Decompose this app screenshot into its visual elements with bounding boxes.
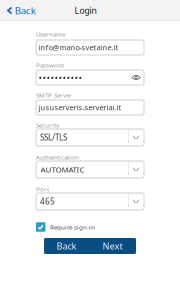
staticText: Login [74,5,96,16]
button[interactable]: Back [0,0,40,21]
staticText: info@mano-svetaine.lt [39,42,119,52]
staticText: SSL/TLS [40,132,67,143]
staticText: Port [36,185,49,193]
staticText: Password [36,61,64,69]
staticText: AUTOMATIC [40,164,84,175]
staticText: Back [56,240,76,252]
staticText: ••••••••••• [39,71,83,84]
staticText: Require sign-in [50,223,95,231]
staticText: SMTP Server [36,91,72,99]
staticText: Username [36,30,65,38]
staticText: jususerveris.serveriai.lt [39,102,122,112]
staticText: Next [102,240,122,252]
staticText: Security [36,121,59,129]
staticText: Back [15,4,36,17]
button[interactable]: Require sign-in [36,222,144,232]
staticText: 465 [40,196,55,207]
button[interactable]: Back [44,238,89,254]
staticText: Authentication [36,153,79,161]
button[interactable]: Next [89,238,136,254]
